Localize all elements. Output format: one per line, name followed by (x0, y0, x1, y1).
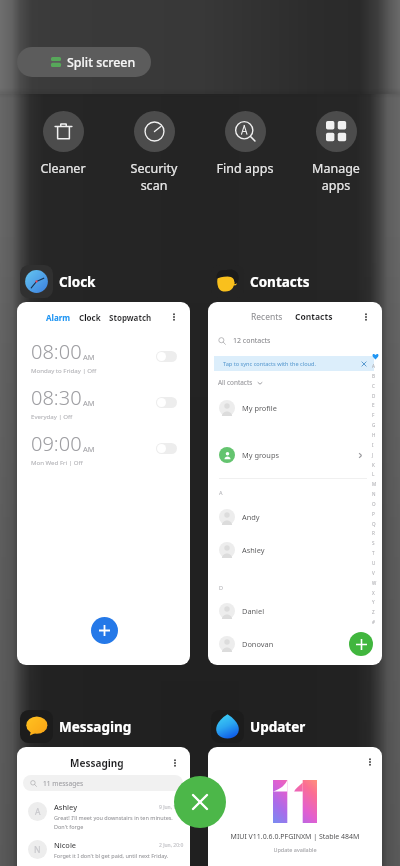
button[interactable]: A (28, 802, 184, 831)
staticText: Ashley (242, 545, 265, 555)
button[interactable]: Daniel (219, 598, 364, 624)
staticText: A (219, 489, 223, 496)
button[interactable]: 08:00 (31, 333, 177, 379)
staticText: 09:00 (31, 430, 82, 457)
button[interactable]: Contacts (295, 311, 333, 323)
staticText: I (372, 442, 374, 448)
button[interactable]: 08:30 (31, 379, 177, 425)
staticText: A (35, 806, 41, 818)
button[interactable]: Cleaner (18, 111, 108, 177)
staticText: Monday to Friday | Off (31, 366, 97, 374)
button[interactable]: Alarm (17, 302, 190, 665)
button[interactable]: My profile (219, 395, 364, 421)
button[interactable]: Stopwatch (109, 312, 152, 323)
button[interactable]: Split screen (17, 47, 151, 77)
staticText: D (372, 393, 376, 399)
button[interactable]: Messaging (20, 709, 132, 744)
button[interactable]: N (28, 840, 184, 859)
button[interactable]: Contacts (211, 264, 310, 299)
staticText: O (372, 501, 376, 507)
staticText: A (372, 363, 375, 369)
staticText: Y (372, 599, 375, 605)
staticText: Cleaner (18, 160, 108, 177)
staticText: Update available (208, 846, 382, 853)
staticText: Find apps (200, 160, 290, 177)
button[interactable]: Search contacts (218, 336, 271, 346)
staticText: Andy (242, 512, 260, 522)
staticText: L (372, 471, 375, 477)
staticText: Nicole (54, 840, 77, 850)
staticText: MIUI V11.0.6.0.PFGINXM | Stable 484M (208, 832, 382, 842)
staticText: N (34, 844, 41, 856)
staticText: 08:00 (31, 338, 82, 365)
staticText: U (372, 560, 376, 566)
button[interactable]: More options (208, 747, 382, 866)
button[interactable]: Tap to sync contacts with the cloud. (214, 356, 374, 371)
staticText: Z (372, 609, 375, 615)
staticText: K (372, 462, 375, 468)
button[interactable]: Messaging (17, 747, 190, 866)
button[interactable]: More options (363, 755, 377, 769)
staticText: Everyday | Off (31, 412, 73, 420)
button[interactable]: Toggle alarm (156, 443, 177, 454)
button[interactable]: More options (167, 310, 181, 324)
staticText: 11 messages (43, 779, 84, 788)
staticText: Split screen (67, 54, 136, 71)
button[interactable]: 09:00 (31, 425, 177, 471)
button[interactable]: Add alarm (91, 617, 118, 644)
button[interactable]: Close all apps (174, 776, 226, 828)
staticText: Contacts (250, 273, 310, 291)
staticText: 08:30 (31, 384, 82, 411)
staticText: N (372, 491, 376, 497)
staticText: V (372, 570, 375, 576)
staticText: Clock (59, 273, 96, 291)
button[interactable]: Ashley (219, 537, 364, 563)
staticText: Tap to sync contacts with the cloud. (223, 360, 316, 368)
button[interactable]: Updater (211, 709, 306, 744)
staticText: Donovan (242, 639, 274, 649)
button[interactable]: Search messages (23, 775, 183, 791)
staticText: My profile (242, 403, 277, 413)
staticText: D (219, 584, 224, 591)
button[interactable]: Toggle alarm (156, 351, 177, 362)
button[interactable]: More options (359, 310, 373, 324)
button[interactable]: Find apps (200, 111, 290, 177)
staticText: Messaging (59, 718, 132, 736)
staticText: W (372, 580, 377, 586)
button[interactable]: Recents (251, 311, 283, 323)
staticText: C (372, 383, 375, 389)
button[interactable]: Add contact (349, 632, 373, 656)
staticText: Daniel (242, 606, 265, 616)
staticText: Manage apps (291, 160, 381, 193)
button[interactable]: Alarm (46, 312, 71, 323)
staticText: All contacts (218, 378, 253, 387)
staticText: G (372, 422, 376, 428)
button[interactable]: My groups (219, 442, 364, 468)
staticText: H (372, 432, 376, 438)
button[interactable]: Favourites (371, 352, 380, 361)
button[interactable]: All contacts (218, 378, 263, 387)
button[interactable]: Manage apps (291, 111, 381, 193)
staticText: My groups (242, 450, 279, 460)
staticText: Ashley (54, 802, 78, 812)
staticText: Q (372, 521, 376, 527)
button[interactable]: Security scan (109, 111, 199, 193)
button[interactable]: Clock (20, 264, 96, 299)
staticText: Forget it I don't bl get paid, until nex… (54, 852, 169, 859)
staticText: AM (83, 352, 95, 362)
button[interactable]: Andy (219, 504, 364, 530)
button[interactable]: Dismiss (360, 360, 368, 368)
staticText: M (372, 481, 377, 487)
button[interactable]: More options (168, 756, 182, 770)
button[interactable]: Clock (79, 312, 101, 323)
button[interactable]: Donovan (219, 631, 364, 657)
staticText: Updater (250, 718, 306, 736)
staticText: Security scan (109, 160, 199, 193)
button[interactable]: Toggle alarm (156, 397, 177, 408)
staticText: AM (83, 444, 95, 454)
staticText: 2 Jun, 20:0 (159, 842, 184, 849)
staticText: 9 Jun, 10:2 (159, 804, 184, 811)
staticText: S (372, 540, 375, 546)
button[interactable]: Recents (208, 302, 382, 665)
staticText: Great! I'll meet you downstairs in ten m… (54, 814, 184, 831)
